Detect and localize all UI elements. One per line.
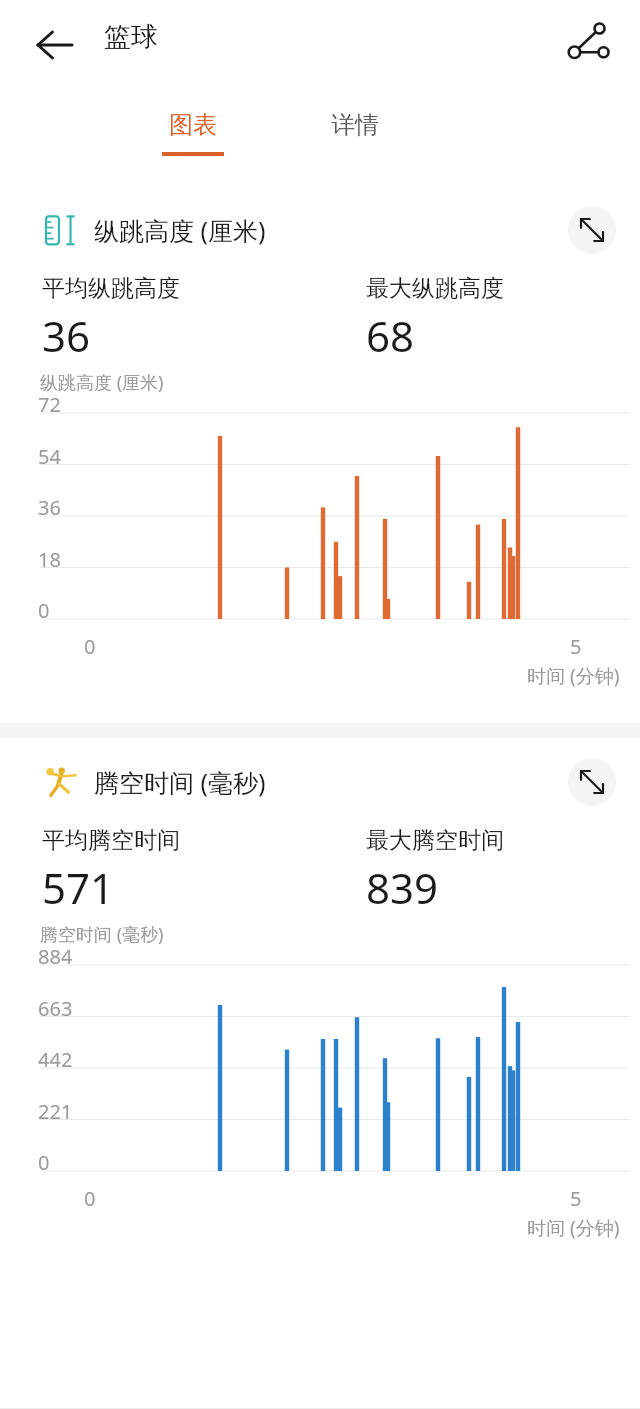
staticText: 54	[38, 443, 61, 470]
staticText: 时间 (分钟)	[527, 1215, 620, 1241]
staticText: 腾空时间 (毫秒)	[94, 765, 266, 799]
staticText: 18	[38, 546, 61, 573]
staticText: 腾空时间 (毫秒)	[40, 922, 164, 947]
button[interactable]: 详情	[312, 92, 398, 176]
staticText: 时间 (分钟)	[527, 663, 620, 689]
staticText: 详情	[331, 110, 379, 140]
staticText: 纵跳高度 (厘米)	[94, 213, 266, 247]
staticText: 36	[38, 494, 61, 521]
staticText: 0	[84, 1185, 96, 1212]
staticText: 0	[38, 597, 50, 624]
staticText: 68	[366, 307, 415, 364]
staticText: 72	[38, 391, 61, 418]
button[interactable]: Share	[556, 10, 622, 76]
staticText: 5	[570, 633, 582, 660]
staticText: 0	[84, 633, 96, 660]
staticText: 篮球	[104, 20, 158, 54]
button[interactable]: 图表	[150, 92, 236, 176]
staticText: 442	[38, 1046, 73, 1073]
staticText: 884	[38, 943, 73, 970]
staticText: 图表	[169, 110, 217, 140]
button[interactable]: Back	[24, 14, 86, 76]
staticText: 平均纵跳高度	[42, 274, 180, 303]
staticText: 36	[42, 307, 91, 364]
staticText: 839	[366, 859, 439, 916]
staticText: 663	[38, 995, 73, 1022]
staticText: 最大腾空时间	[366, 826, 504, 855]
staticText: 571	[42, 859, 115, 916]
staticText: 纵跳高度 (厘米)	[40, 370, 164, 395]
staticText: 5	[570, 1185, 582, 1212]
staticText: 0	[38, 1149, 50, 1176]
staticText: 平均腾空时间	[42, 826, 180, 855]
staticText: 最大纵跳高度	[366, 274, 504, 303]
staticText: 221	[38, 1098, 73, 1125]
button[interactable]: Expand chart	[568, 758, 616, 806]
button[interactable]: Expand chart	[568, 206, 616, 254]
